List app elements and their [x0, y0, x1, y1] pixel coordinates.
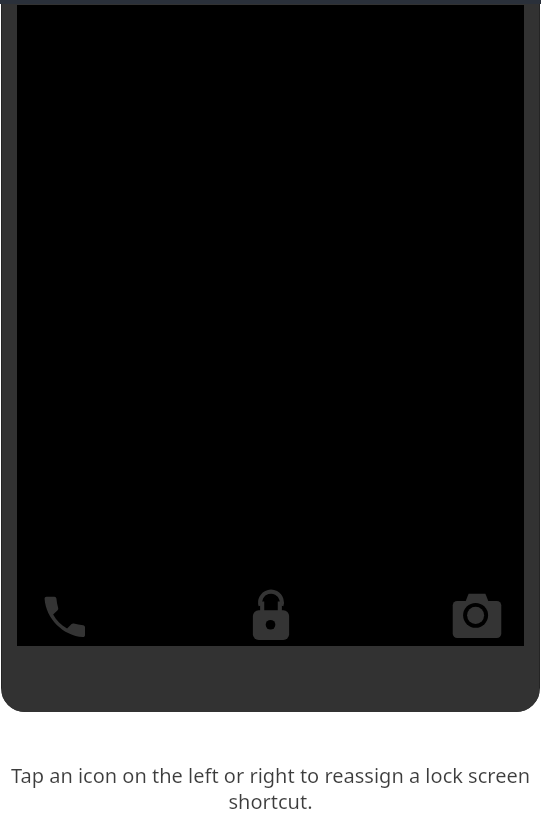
other: Locked	[111, 574, 430, 660]
button[interactable]: Phone shortcut	[17, 574, 111, 660]
staticText: Tap an icon on the left or right to reas…	[6, 762, 535, 815]
button[interactable]: Camera shortcut	[430, 574, 524, 660]
